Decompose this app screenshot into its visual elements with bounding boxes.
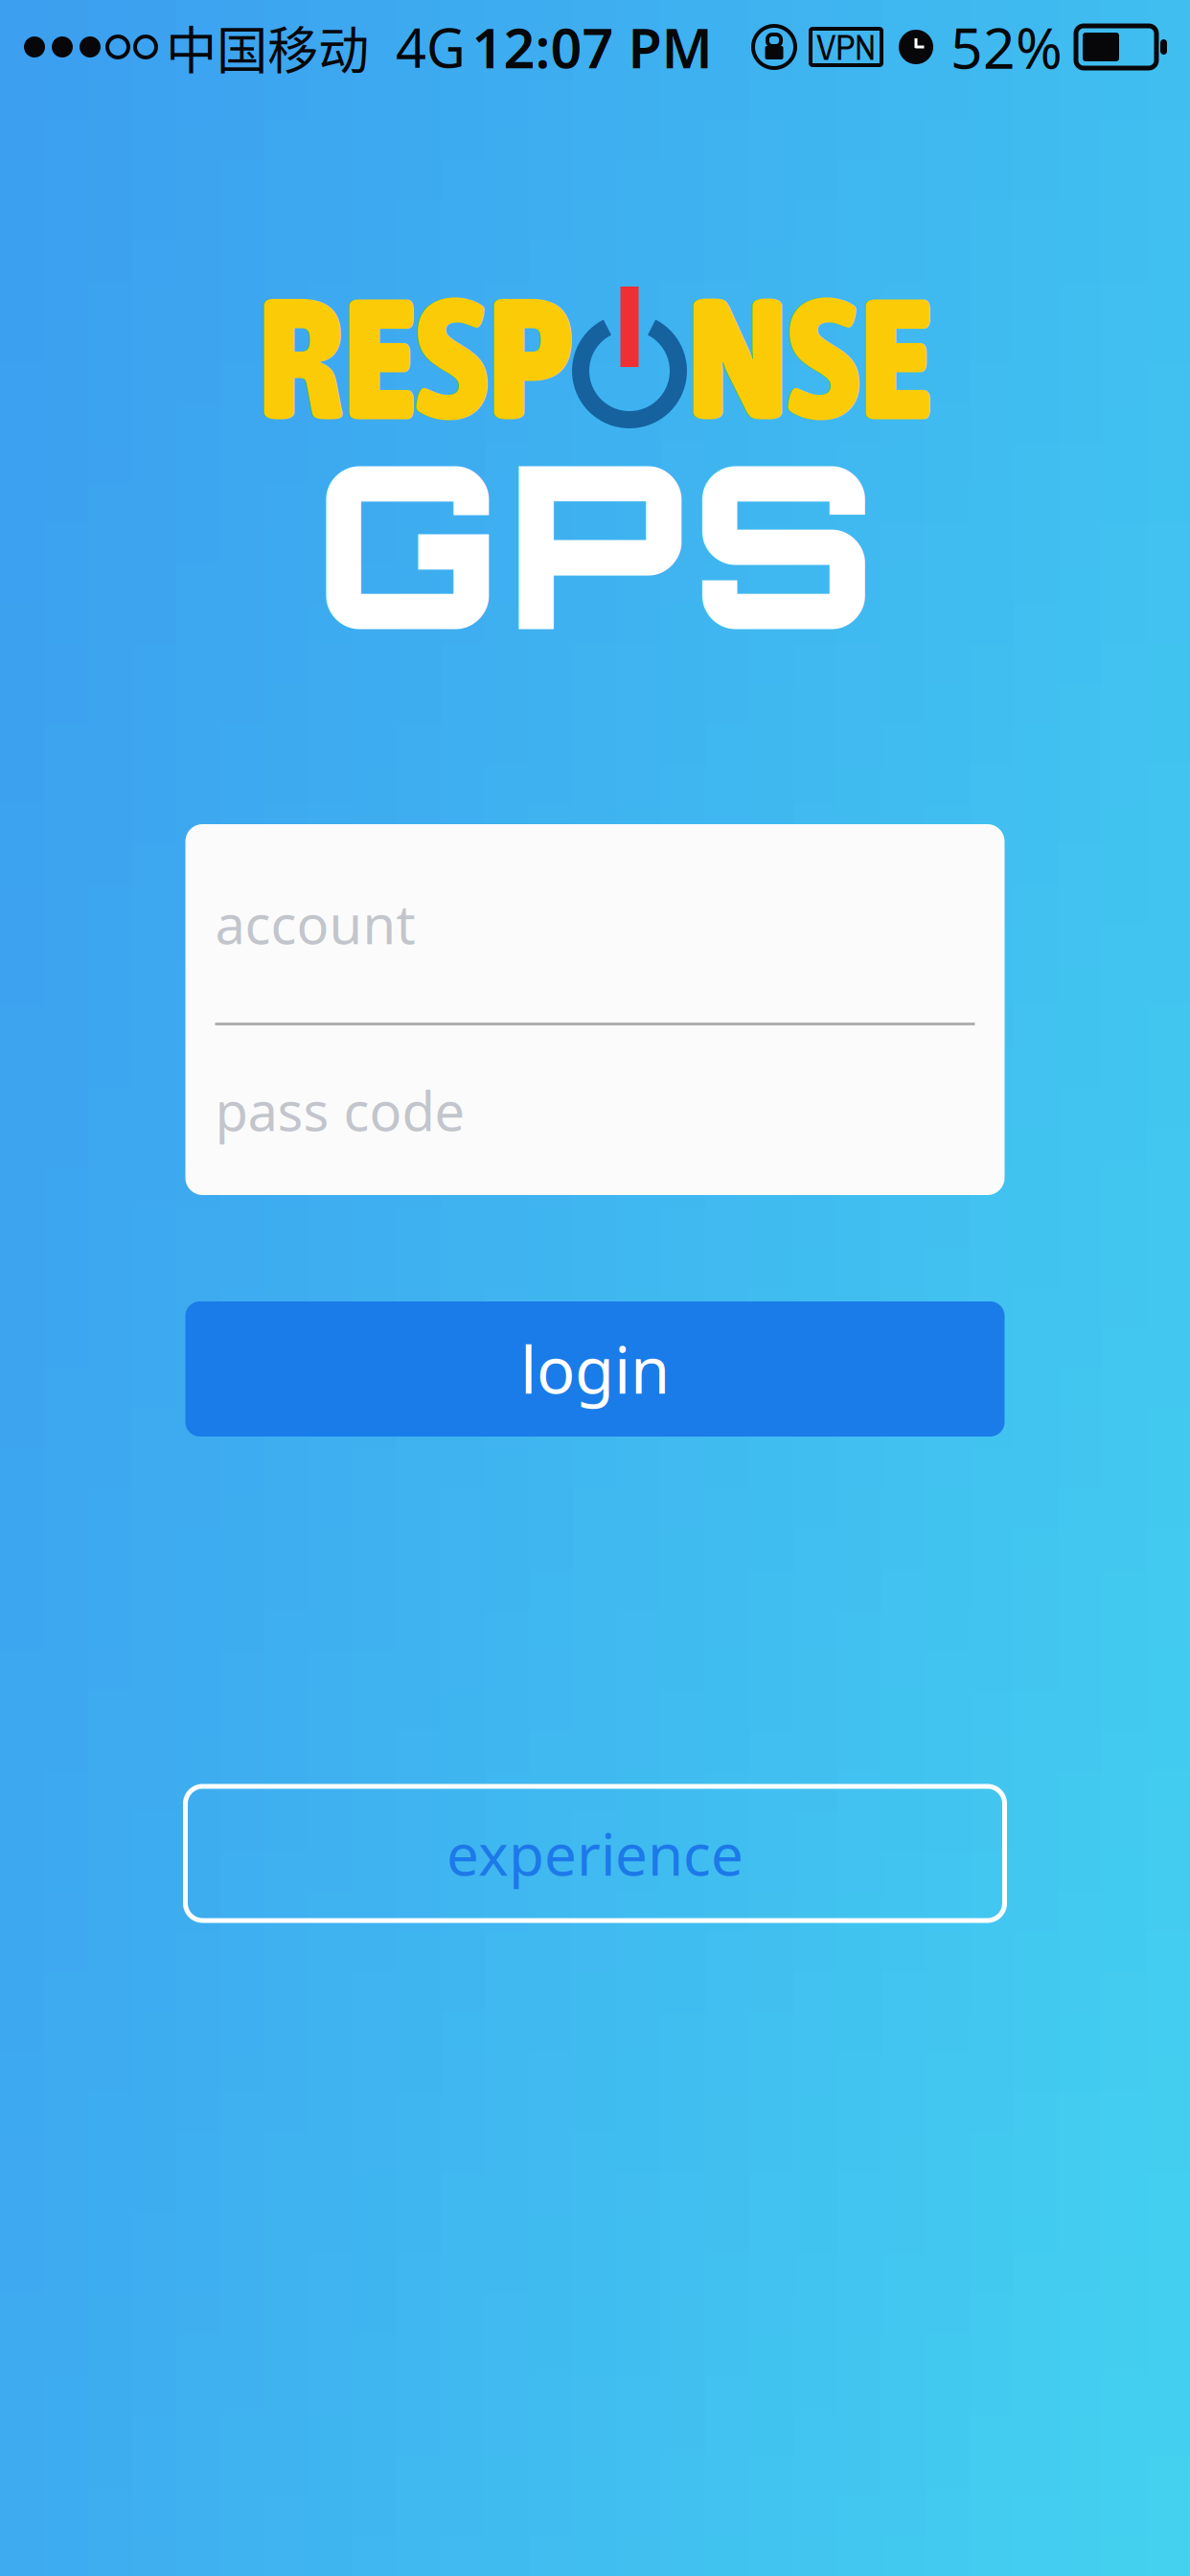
staticText: NSE	[687, 259, 932, 456]
staticText: account	[215, 888, 415, 959]
button[interactable]: login	[185, 1301, 1005, 1437]
staticText: RESP	[258, 259, 572, 456]
staticText: 12:07 PM	[472, 10, 712, 83]
staticText: 52%	[950, 10, 1063, 84]
staticText: GPS	[313, 401, 877, 684]
staticText: VPN	[816, 23, 876, 71]
staticText: pass code	[215, 1075, 465, 1146]
staticText: 4G	[396, 11, 466, 83]
staticText: login	[520, 1327, 670, 1411]
button[interactable]: experience	[185, 1786, 1005, 1920]
staticText: experience	[446, 1815, 744, 1892]
staticText: 中国移动	[166, 10, 369, 84]
